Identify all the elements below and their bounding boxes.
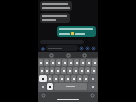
button[interactable]: Key [61,67,66,74]
button[interactable]: Key [91,67,96,74]
button[interactable]: Key [73,67,78,74]
button[interactable]: Key [45,67,49,74]
button[interactable]: Key [67,67,72,74]
button[interactable]: Space [54,83,87,90]
button[interactable]: Settings [82,53,87,58]
button[interactable]: Key [50,67,54,74]
button[interactable]: Sticker [66,53,71,58]
button[interactable] [40,13,70,23]
button[interactable]: Clipboard [49,53,54,58]
button[interactable]: Language [41,93,46,98]
button[interactable]: Key [65,75,70,82]
button[interactable]: Key [68,59,73,66]
button[interactable]: Key [92,59,97,66]
button[interactable]: Key [83,75,88,82]
button[interactable]: Shift [39,75,47,82]
button[interactable] [57,26,96,37]
button[interactable]: Key [85,67,90,74]
button[interactable]: Backspace [89,75,97,82]
button[interactable]: Add attachment [40,46,45,51]
button[interactable]: Enter [88,83,97,90]
button[interactable]: Key [59,75,64,82]
button[interactable]: Key [55,67,60,74]
button[interactable]: Key [39,59,43,66]
button[interactable]: Symbols [39,83,46,90]
button[interactable]: Camera [79,46,84,51]
button[interactable]: Key [62,59,67,66]
button[interactable]: Key [86,59,91,66]
button[interactable]: Key [74,59,79,66]
button[interactable]: Key [71,75,76,82]
button[interactable]: Emoji [47,83,53,90]
button[interactable] [46,45,78,51]
button[interactable]: Key [53,75,58,82]
button[interactable]: Key [77,75,82,82]
button[interactable]: Key [56,59,61,66]
button[interactable]: Voice message [91,46,96,51]
button[interactable]: Microphone [90,93,95,98]
button[interactable]: Key [50,59,55,66]
button[interactable]: Key [80,59,85,66]
button[interactable]: Key [40,67,44,74]
button[interactable] [40,1,72,11]
button[interactable]: Key [79,67,84,74]
button[interactable]: Gallery [85,46,90,51]
button[interactable]: Key [48,75,52,82]
button[interactable]: Key [44,59,49,66]
